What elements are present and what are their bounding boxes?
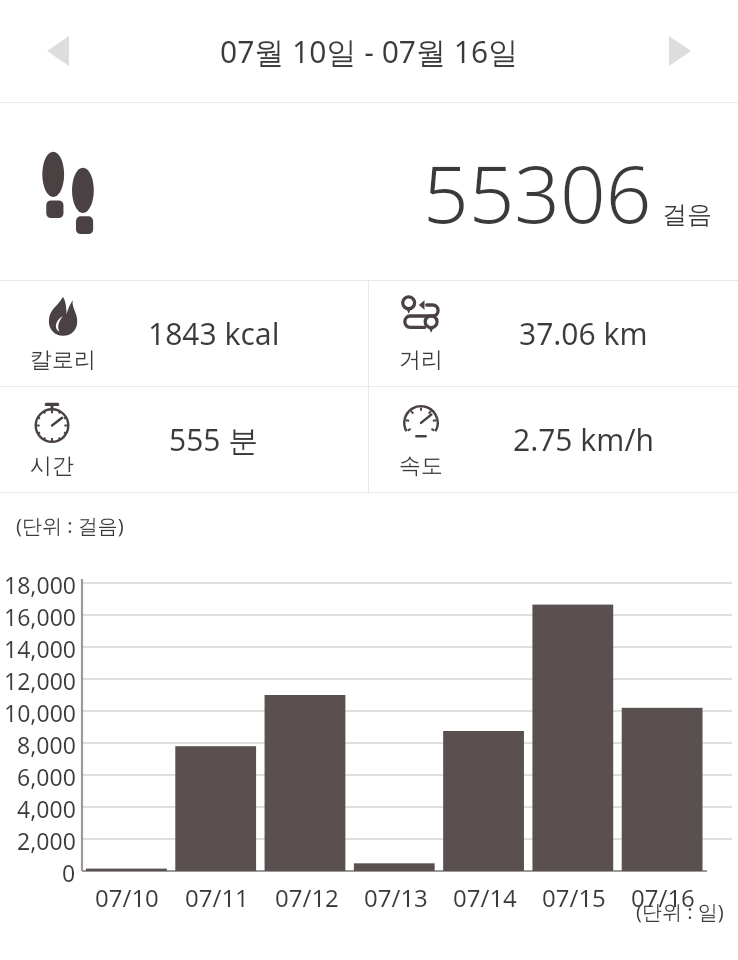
button[interactable]: 55306 xyxy=(0,103,738,280)
staticText: 07/13 xyxy=(364,881,428,914)
staticText: 07/11 xyxy=(185,881,249,914)
staticText: 2.75 km/h xyxy=(513,419,655,460)
button[interactable]: Previous week xyxy=(26,19,90,83)
button[interactable]: 속도 xyxy=(369,387,738,492)
staticText: 2,000 xyxy=(17,825,76,856)
staticText: 걸음 xyxy=(662,199,712,230)
staticText: 속도 xyxy=(399,452,443,480)
staticText: 8,000 xyxy=(17,729,76,760)
staticText: 거리 xyxy=(399,346,443,374)
staticText: 07/14 xyxy=(453,881,517,914)
staticText: 4,000 xyxy=(17,793,76,824)
staticText: 10,000 xyxy=(4,697,76,728)
staticText: 14,000 xyxy=(4,633,76,664)
staticText: 37.06 km xyxy=(519,313,648,354)
staticText: 55306 xyxy=(423,137,652,246)
staticText: 07/15 xyxy=(542,881,606,914)
staticText: 18,000 xyxy=(4,569,76,600)
staticText: 12,000 xyxy=(4,665,76,696)
staticText: 칼로리 xyxy=(30,346,96,374)
staticText: 07/10 xyxy=(95,881,159,914)
staticText: 6,000 xyxy=(17,761,76,792)
staticText: 07/12 xyxy=(275,881,339,914)
staticText: 07월 10일 - 07월 16일 xyxy=(220,31,519,72)
button[interactable]: 칼로리 xyxy=(0,281,368,386)
button[interactable]: 시간 xyxy=(0,387,368,492)
staticText: 시간 xyxy=(30,452,74,480)
staticText: 0 xyxy=(62,857,76,888)
staticText: 555 분 xyxy=(169,419,259,460)
staticText: (단위 : 걸음) xyxy=(16,512,124,539)
button[interactable]: Next week xyxy=(648,19,712,83)
button[interactable]: 거리 xyxy=(369,281,738,386)
staticText: (단위 : 일) xyxy=(636,898,724,925)
staticText: 1843 kcal xyxy=(148,313,280,354)
staticText: 16,000 xyxy=(4,601,76,632)
staticText: 07/16 xyxy=(631,881,695,914)
